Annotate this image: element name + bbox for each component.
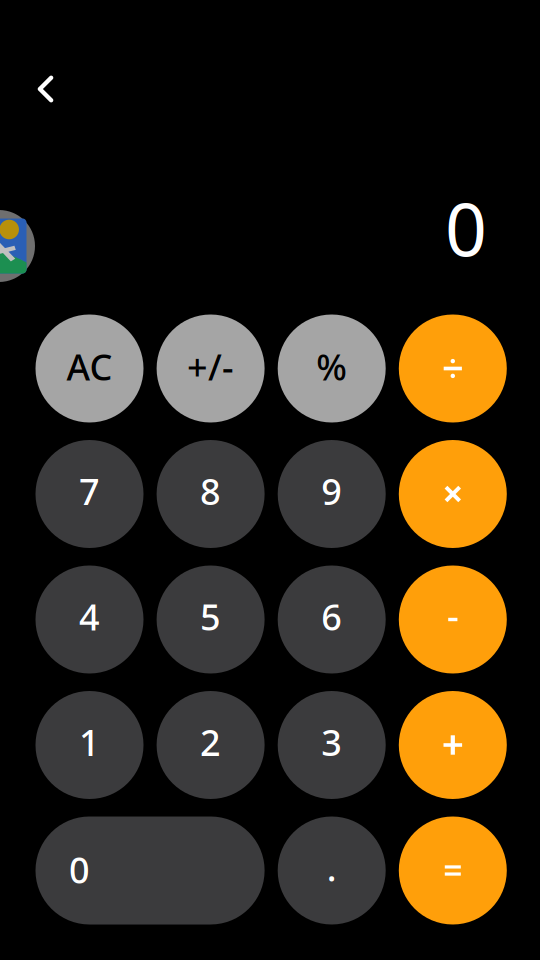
button[interactable]: Divide bbox=[399, 314, 507, 422]
button[interactable]: 9 bbox=[278, 440, 386, 548]
staticText: 9 bbox=[321, 467, 342, 515]
staticText: 8 bbox=[200, 467, 221, 515]
staticText: 6 bbox=[321, 593, 342, 640]
button[interactable]: 2 bbox=[157, 691, 265, 799]
staticText: 5 bbox=[200, 593, 221, 640]
staticText: 3 bbox=[321, 718, 342, 766]
staticText: . bbox=[327, 844, 337, 891]
staticText: % bbox=[316, 343, 347, 390]
button[interactable]: 8 bbox=[157, 440, 265, 548]
button[interactable]: Subtract bbox=[399, 565, 507, 673]
staticText: AC bbox=[66, 343, 112, 390]
button[interactable]: . bbox=[278, 816, 386, 924]
button[interactable]: 6 bbox=[278, 565, 386, 673]
button[interactable]: 0 bbox=[35, 816, 265, 924]
button[interactable]: Floating shortcut bbox=[0, 210, 35, 282]
button[interactable]: 5 bbox=[157, 565, 265, 673]
staticText: 0 bbox=[445, 179, 487, 277]
button[interactable]: % bbox=[278, 314, 386, 422]
staticText: 4 bbox=[79, 593, 100, 640]
button[interactable]: Back bbox=[22, 66, 68, 112]
button[interactable]: 4 bbox=[35, 565, 143, 673]
staticText: 0 bbox=[69, 846, 90, 893]
button[interactable]: Equals bbox=[399, 816, 507, 924]
button[interactable]: Add bbox=[399, 691, 507, 799]
button[interactable]: 7 bbox=[35, 440, 143, 548]
staticText: 2 bbox=[200, 718, 221, 766]
staticText: 1 bbox=[79, 718, 100, 766]
button[interactable]: AC bbox=[35, 314, 143, 422]
button[interactable]: 3 bbox=[278, 691, 386, 799]
staticText: 7 bbox=[79, 467, 100, 515]
button[interactable]: Multiply bbox=[399, 440, 507, 548]
button[interactable]: +/- bbox=[157, 314, 265, 422]
staticText: +/- bbox=[187, 343, 234, 390]
button[interactable]: 1 bbox=[35, 691, 143, 799]
